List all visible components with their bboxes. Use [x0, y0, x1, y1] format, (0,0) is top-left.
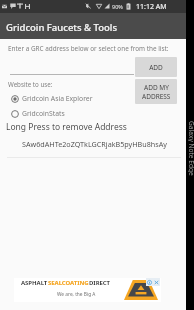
staticText: Website to use: [8, 80, 53, 88]
staticText: DIRECT [89, 279, 111, 287]
button[interactable]: Ad info [146, 278, 153, 286]
button[interactable]: Gridcoin Asia Explorer [0, 92, 130, 105]
staticText: Galaxy Note Edge [188, 121, 194, 176]
button[interactable]: ADD MY [135, 79, 177, 104]
staticText: SAw6dAHTe2oZQTkLGCRjakB5pyHBu8hsAy [22, 139, 167, 149]
button[interactable]: ADD [135, 57, 177, 77]
staticText: Enter a GRC address below or select one … [8, 44, 169, 53]
button[interactable] [14, 278, 161, 302]
staticText: ASPHALT [21, 279, 48, 287]
staticText: ADD MY [144, 83, 169, 92]
staticText: GridcoinStats [22, 109, 65, 118]
button[interactable] [8, 58, 135, 75]
button[interactable]: SAw6dAHTe2oZQTkLGCRjakB5pyHBu8hsAy [0, 134, 186, 154]
button[interactable]: Close ad [153, 278, 160, 286]
button[interactable]: GridcoinStats [0, 107, 130, 120]
staticText: SEALCOATING [48, 279, 89, 287]
staticText: We are, the Big A [57, 291, 96, 298]
staticText: 90% [112, 3, 123, 10]
staticText: ADDRESS [142, 92, 171, 101]
staticText: Gridcoin Asia Explorer [22, 94, 93, 103]
staticText: Gridcoin Faucets & Tools [6, 21, 118, 34]
staticText: 11:12 AM [136, 2, 167, 12]
staticText: ADD [149, 63, 163, 72]
staticText: Long Press to remove Address [6, 121, 127, 133]
